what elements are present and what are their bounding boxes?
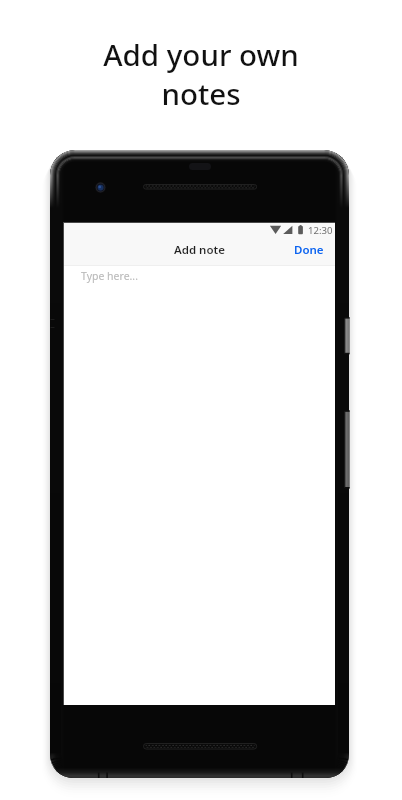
staticText: Add your own notes [0, 34, 402, 114]
staticText: 12:30 [308, 224, 333, 237]
other: Wi-Fi, mobile signal and battery status [269, 225, 309, 237]
staticText: Add note [174, 242, 225, 258]
staticText: Done [294, 242, 324, 255]
button[interactable]: Done [286, 236, 332, 261]
staticText: Type here... [81, 269, 138, 283]
